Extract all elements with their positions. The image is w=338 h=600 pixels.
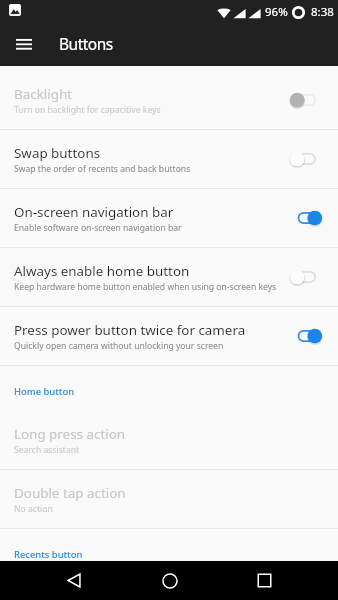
button[interactable]: Home bbox=[141, 561, 198, 600]
button[interactable]: Press power button twice for camera bbox=[0, 307, 338, 365]
staticText: Long press action bbox=[14, 425, 126, 443]
button[interactable]: Toggle setting bbox=[297, 206, 323, 230]
button[interactable]: Swap buttons bbox=[0, 130, 338, 188]
staticText: Backlight bbox=[14, 85, 73, 103]
staticText: 96% bbox=[265, 4, 288, 20]
button[interactable]: Backlight bbox=[0, 71, 338, 129]
button[interactable]: Toggle setting bbox=[297, 88, 323, 112]
staticText: Double tap action bbox=[14, 484, 126, 502]
button[interactable]: Open navigation menu bbox=[0, 24, 47, 66]
staticText: Buttons bbox=[59, 33, 113, 54]
staticText: Swap the order of recents and back butto… bbox=[14, 163, 191, 175]
button[interactable]: Always enable home button bbox=[0, 248, 338, 306]
staticText: Turn on backlight for capacitive keys bbox=[14, 104, 161, 116]
staticText: No action bbox=[14, 503, 53, 515]
button[interactable]: Back bbox=[45, 561, 102, 600]
staticText: Enable software on-screen navigation bar bbox=[14, 222, 182, 234]
button[interactable]: On-screen navigation bar bbox=[0, 189, 338, 247]
staticText: 8:38 bbox=[311, 4, 334, 20]
staticText: Search assistant bbox=[14, 444, 80, 456]
button[interactable]: Double tap action bbox=[0, 470, 338, 528]
staticText: On-screen navigation bar bbox=[14, 203, 174, 221]
button[interactable]: Toggle setting bbox=[297, 147, 323, 171]
staticText: Keep hardware home button enabled when u… bbox=[14, 281, 277, 293]
staticText: Always enable home button bbox=[14, 262, 190, 280]
button[interactable]: Toggle setting bbox=[297, 265, 323, 289]
staticText: Quickly open camera without unlocking yo… bbox=[14, 340, 224, 352]
staticText: Press power button twice for camera bbox=[14, 321, 246, 339]
staticText: Recents button bbox=[14, 548, 83, 561]
button[interactable]: Toggle setting bbox=[297, 324, 323, 348]
button[interactable]: Long press action bbox=[0, 411, 338, 469]
staticText: Swap buttons bbox=[14, 144, 101, 162]
button[interactable]: Recent apps bbox=[236, 561, 293, 600]
staticText: Home button bbox=[14, 385, 75, 398]
